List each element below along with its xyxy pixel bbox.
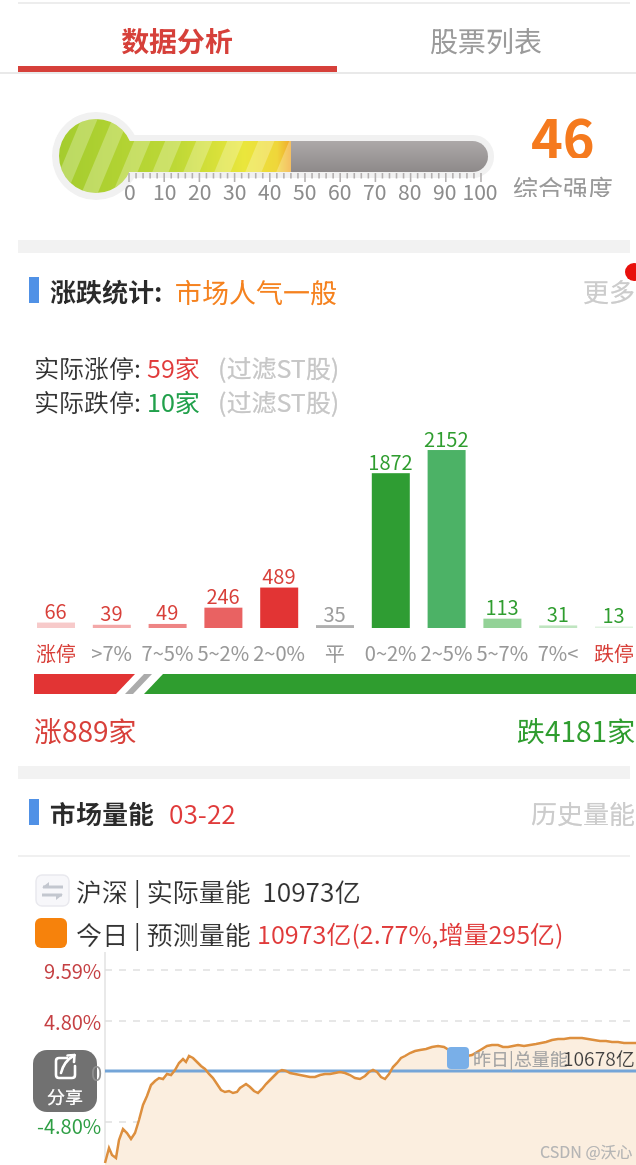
staticText: 10家 — [147, 383, 200, 417]
staticText: 市场量能 — [50, 794, 155, 830]
button[interactable]: 今日 | 预测量能 — [76, 915, 564, 951]
button[interactable]: 分享 — [33, 1050, 97, 1112]
staticText: 涨跌统计: — [50, 272, 163, 308]
staticText: 市场人气一般 — [175, 272, 337, 308]
staticText: 59家 — [147, 349, 200, 383]
staticText: 数据分析 — [121, 20, 234, 61]
staticText: 0 — [91, 1058, 103, 1086]
staticText: 实际涨停: — [34, 349, 147, 383]
staticText: 股票列表 — [430, 20, 543, 61]
staticText: (过滤ST股) — [218, 349, 340, 383]
staticText: 跌4181家 — [517, 710, 636, 744]
staticText: 今日 | 预测量能 — [76, 915, 257, 951]
staticText: 沪深 | 实际量能 10973亿 — [76, 872, 361, 908]
staticText: 03-22 — [169, 794, 236, 830]
staticText: 综合强度 — [513, 169, 614, 197]
staticText: (过滤ST股) — [218, 383, 340, 417]
button[interactable]: 更多 — [576, 272, 636, 308]
staticText: 分享 — [47, 1083, 83, 1109]
staticText: 更多 — [583, 272, 636, 308]
button[interactable]: 数据分析 — [18, 12, 337, 68]
staticText: 46 — [531, 96, 595, 158]
button[interactable]: 股票列表 — [337, 12, 636, 68]
button[interactable]: 历史量能 — [516, 794, 636, 830]
staticText: 10973亿(2.77%,增量295亿) — [257, 915, 564, 951]
staticText: 历史量能 — [531, 794, 636, 830]
staticText: 实际跌停: — [34, 383, 147, 417]
button[interactable]: 沪深 | 实际量能 10973亿 — [76, 872, 361, 908]
staticText: 涨889家 — [34, 710, 137, 744]
